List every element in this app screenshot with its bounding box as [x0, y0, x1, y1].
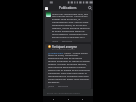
staticText: Participant anonyme [52, 45, 77, 48]
staticText: @Modérateur a écrit : Lorem ipsum dolor … [48, 51, 90, 84]
staticText: J'aime [52, 40, 59, 42]
button[interactable]: Répondre [58, 85, 69, 88]
staticText: Publications [59, 6, 77, 10]
staticText: Écrire un commentaire public [47, 91, 80, 94]
button[interactable]: J'aime [52, 40, 59, 42]
button[interactable]: Morbi nec ullamcorper erat, sed nec ultr… [45, 11, 91, 42]
staticText: Morbi nec ullamcorper erat, sed nec ultr… [52, 12, 90, 39]
button[interactable]: J'aime [48, 85, 55, 88]
button[interactable]: Recents [79, 96, 86, 102]
staticText: Répondre [62, 40, 73, 42]
button[interactable]: Back [43, 5, 50, 11]
button[interactable]: Home [65, 96, 72, 102]
staticText: en a assez de l'attente [52, 48, 75, 51]
staticText: Répondre [58, 85, 69, 88]
button[interactable]: Search [86, 5, 93, 11]
button[interactable]: Back [50, 96, 57, 102]
button[interactable]: Participant anonyme [45, 44, 91, 89]
button[interactable]: Écrire un commentaire public [43, 89, 93, 96]
staticText: J'aime [48, 85, 55, 88]
button[interactable]: Répondre [62, 40, 73, 42]
